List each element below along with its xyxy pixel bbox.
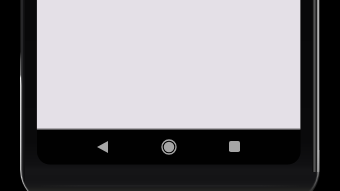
button[interactable]: Home	[157, 135, 180, 158]
button[interactable]: Back	[91, 135, 114, 158]
button[interactable]: Recent apps	[223, 135, 246, 158]
